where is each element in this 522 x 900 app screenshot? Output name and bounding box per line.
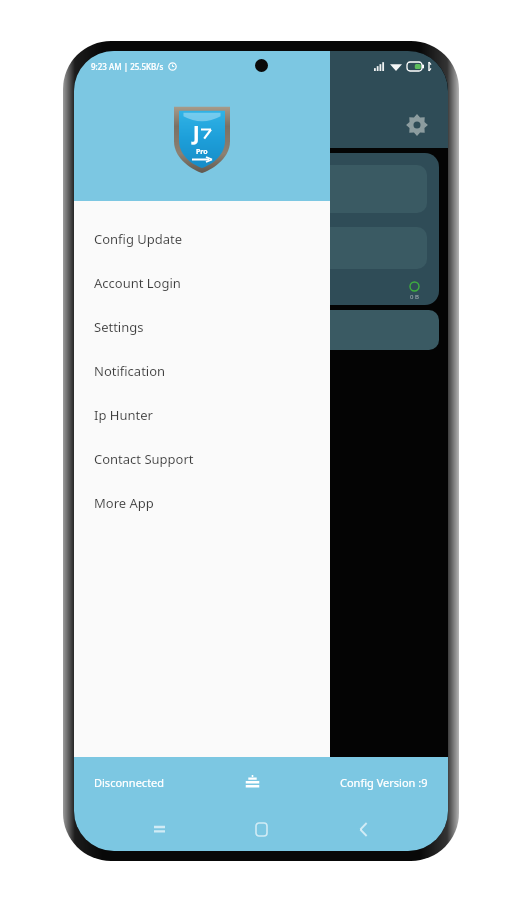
- staticText: Ip Hunter: [94, 406, 153, 424]
- button[interactable]: Config Update: [74, 217, 330, 261]
- staticText: J: [193, 119, 200, 146]
- staticText: More App: [94, 494, 154, 512]
- button[interactable]: Config Version :9: [336, 771, 432, 794]
- staticText: Notification: [94, 362, 166, 380]
- button[interactable]: More App: [74, 481, 330, 525]
- staticText: Account Login: [94, 274, 181, 292]
- staticText: Config Update: [94, 230, 183, 248]
- button[interactable]: Ip Hunter: [74, 393, 330, 437]
- button[interactable]: Logs: [239, 769, 265, 795]
- button[interactable]: Recents: [142, 812, 176, 846]
- button[interactable]: Home: [244, 812, 278, 846]
- staticText: Contact Support: [94, 450, 194, 468]
- button[interactable]: Contact Support: [74, 437, 330, 481]
- button[interactable]: Settings: [74, 305, 330, 349]
- staticText: Pro: [196, 147, 208, 157]
- staticText: Settings: [94, 318, 144, 336]
- button[interactable]: Disconnected: [90, 771, 169, 794]
- staticText: Config Version :9: [340, 775, 428, 790]
- staticText: 9:23 AM | 25.5KB/s: [91, 61, 164, 72]
- button[interactable]: Notification: [74, 349, 330, 393]
- button[interactable]: ADDTIME: [83, 310, 439, 350]
- button[interactable]: Account Login: [74, 261, 330, 305]
- button[interactable]: Connect: [83, 359, 203, 397]
- staticText: Disconnected: [94, 775, 165, 790]
- button[interactable]: Back: [346, 812, 380, 846]
- staticText: 0 B: [410, 293, 419, 301]
- button[interactable]: Settings: [404, 112, 430, 138]
